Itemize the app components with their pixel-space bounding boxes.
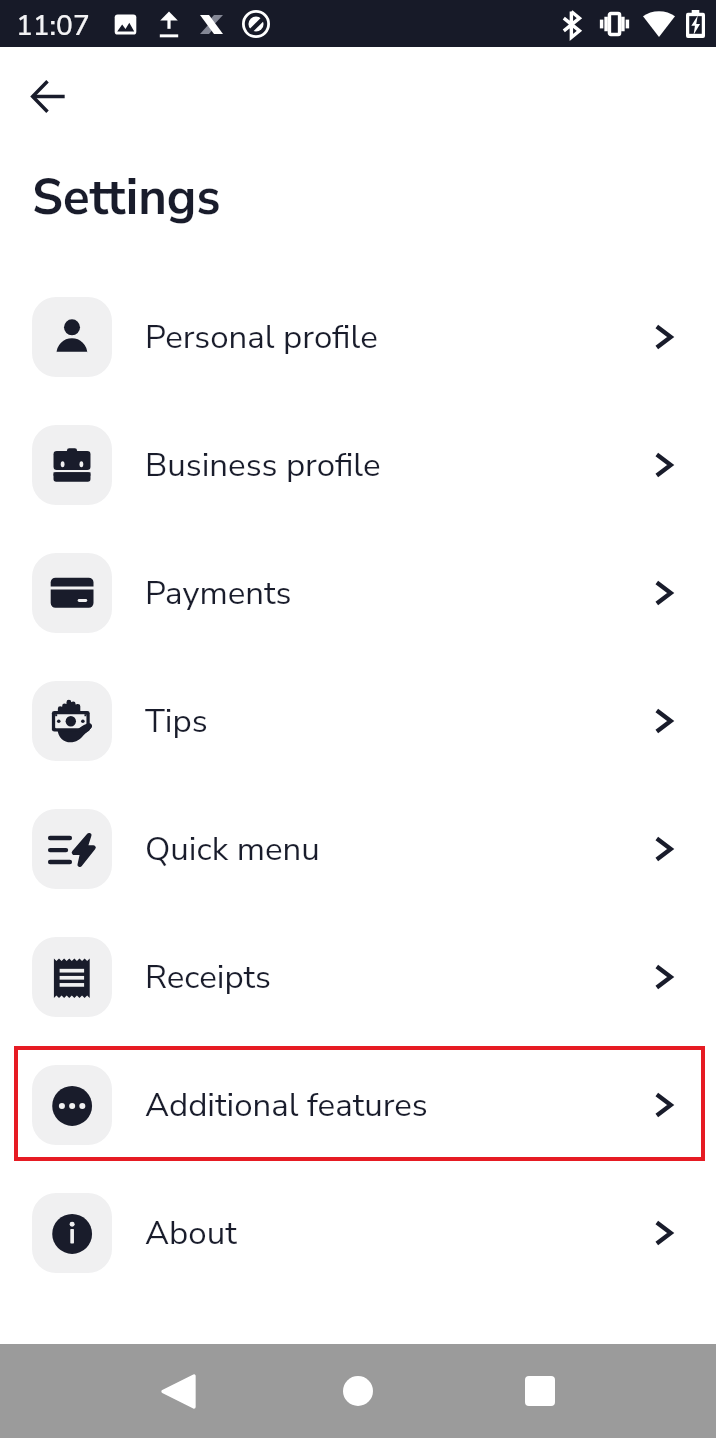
- staticText: Additional features: [145, 1083, 428, 1128]
- button[interactable]: Tips: [0, 657, 716, 785]
- staticText: 11:07: [16, 7, 90, 45]
- staticText: About: [145, 1211, 237, 1256]
- button[interactable]: Personal profile: [0, 273, 716, 401]
- button[interactable]: Additional features: [0, 1041, 716, 1169]
- staticText: Receipts: [145, 955, 271, 1000]
- staticText: Quick menu: [145, 827, 320, 872]
- button[interactable]: Receipts: [0, 913, 716, 1041]
- button[interactable]: About: [0, 1169, 716, 1297]
- button[interactable]: Business profile: [0, 401, 716, 529]
- button[interactable]: Home: [318, 1351, 398, 1431]
- staticText: Business profile: [145, 443, 381, 488]
- button[interactable]: Payments: [0, 529, 716, 657]
- button[interactable]: Back: [4, 52, 92, 140]
- staticText: Personal profile: [145, 315, 378, 360]
- button[interactable]: Recents: [500, 1351, 580, 1431]
- button[interactable]: Back: [138, 1351, 218, 1431]
- staticText: Tips: [145, 699, 208, 744]
- button[interactable]: Quick menu: [0, 785, 716, 913]
- staticText: Payments: [145, 571, 292, 616]
- staticText: Settings: [32, 164, 221, 231]
